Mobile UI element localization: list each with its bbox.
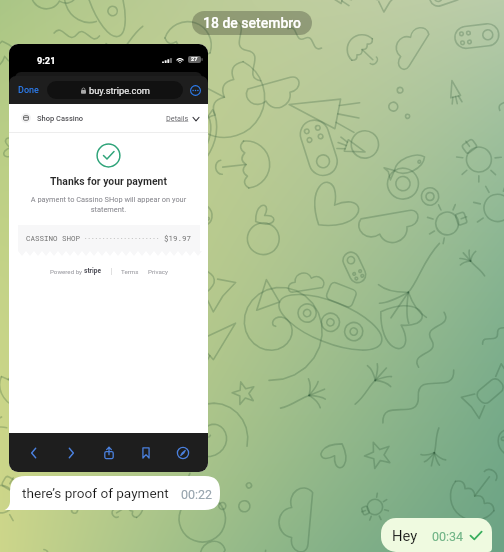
staticText: Thanks for your payment	[9, 175, 208, 187]
staticText: Hey	[392, 527, 418, 544]
button[interactable]: buy.stripe.com	[47, 81, 183, 99]
button[interactable]: Privacy	[148, 268, 168, 275]
button[interactable]: there’s proof of payment	[4, 476, 220, 510]
button[interactable]: Done	[18, 85, 39, 96]
button[interactable]: Back	[22, 441, 46, 465]
staticText: 27	[191, 56, 198, 63]
button[interactable]: Tabs	[171, 441, 195, 465]
staticText: 18 de setembro	[203, 15, 301, 31]
staticText: Powered by	[50, 268, 84, 275]
staticText: Details	[166, 114, 189, 123]
button[interactable]: Terms	[121, 268, 139, 275]
button[interactable]: Share	[97, 441, 121, 465]
staticText: stripe	[84, 267, 102, 275]
staticText: $19.97	[164, 233, 192, 243]
button[interactable]: 9:21	[9, 44, 208, 472]
staticText: CASSINO SHOP	[26, 233, 81, 243]
staticText: Shop Cassino	[37, 114, 84, 123]
staticText: A payment to Cassino SHop will appear on…	[27, 195, 190, 214]
button[interactable]: Bookmarks	[134, 441, 158, 465]
staticText: buy.stripe.com	[89, 85, 150, 96]
button[interactable]: More	[190, 85, 201, 96]
button[interactable]: Hey	[381, 518, 492, 552]
staticText: 9:21	[37, 55, 56, 66]
button[interactable]: 18 de setembro	[192, 11, 312, 35]
staticText: 00:34	[432, 529, 464, 544]
staticText: there’s proof of payment	[22, 485, 169, 501]
staticText: 00:22	[181, 487, 213, 502]
button[interactable]: Forward	[59, 441, 83, 465]
button[interactable]: Details	[166, 114, 199, 123]
